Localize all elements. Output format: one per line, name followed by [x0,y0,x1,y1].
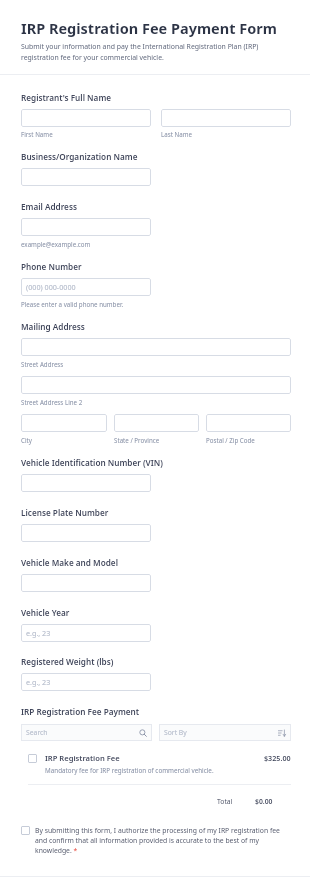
staticText: Business/Organization Name [21,151,138,162]
button[interactable]: e.g., 23 [21,673,151,691]
staticText: e.g., 23 [26,628,51,638]
staticText: Mailing Address [21,321,85,332]
staticText: Postal / Zip Code [206,436,255,444]
button[interactable]: By submitting this form, I authorize the… [21,826,291,855]
staticText: (000) 000-0000 [26,282,76,292]
staticText: $325.00 [264,753,291,763]
button[interactable]: Sort By [159,724,291,741]
staticText: Total [217,797,233,806]
button[interactable]: (000) 000-0000 [21,278,151,296]
button[interactable] [21,414,107,432]
staticText: Search [26,728,139,737]
staticText: License Plate Number [21,507,109,518]
button[interactable] [21,376,291,394]
button[interactable] [21,474,151,492]
staticText: Street Address [21,360,64,368]
staticText: Vehicle Year [21,607,70,618]
staticText: City [21,436,32,444]
button[interactable] [21,524,151,542]
button[interactable] [161,109,291,127]
other: Sort By [278,729,286,737]
staticText: Registrant's Full Name [21,92,112,103]
staticText: First Name [21,130,53,138]
staticText: Mandatory fee for IRP registration of co… [45,766,214,775]
button[interactable] [21,109,151,127]
staticText: Please enter a valid phone number. [21,300,124,308]
staticText: IRP Registration Fee Payment [21,706,140,717]
staticText: IRP Registration Fee Payment Form [21,18,277,38]
staticText: e.g., 23 [26,677,51,687]
button[interactable] [21,338,291,356]
staticText: Email Address [21,201,77,212]
staticText: State / Province [114,436,160,444]
button[interactable]: Search [21,724,152,741]
button[interactable] [206,414,291,432]
staticText: By submitting this form, I authorize the… [35,826,291,855]
button[interactable]: IRP Registration Fee [21,753,291,775]
other: Search [139,729,147,737]
button[interactable] [114,414,199,432]
button[interactable]: e.g., 23 [21,624,151,642]
staticText: example@example.com [21,240,91,248]
staticText: Vehicle Make and Model [21,557,118,568]
staticText: Vehicle Identification Number (VIN) [21,457,163,468]
button[interactable] [21,574,151,592]
staticText: Phone Number [21,261,82,272]
button[interactable] [21,168,151,186]
staticText: Last Name [161,130,192,138]
staticText: $0.00 [255,797,273,806]
staticText: Sort By [164,728,278,737]
staticText: IRP Registration Fee [45,753,120,763]
staticText: Registered Weight (lbs) [21,656,114,667]
button[interactable] [21,218,151,236]
staticText: Street Address Line 2 [21,398,83,406]
staticText: Submit your information and pay the Inte… [21,42,291,62]
